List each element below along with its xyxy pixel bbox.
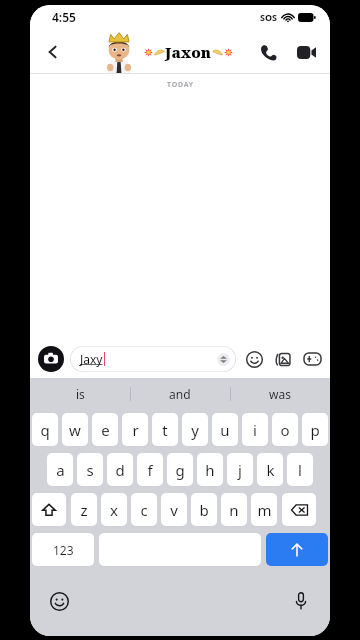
button[interactable]: w <box>62 413 88 446</box>
button[interactable]: Back <box>40 39 66 65</box>
button[interactable]: d <box>107 453 133 486</box>
button[interactable]: n <box>221 493 247 526</box>
staticText: f <box>147 460 153 480</box>
staticText: and <box>169 386 191 402</box>
staticText: 4:55 <box>52 9 76 25</box>
button[interactable]: Camera <box>38 346 64 372</box>
staticText: e <box>101 420 110 440</box>
button[interactable]: m <box>251 493 277 526</box>
staticText: v <box>170 500 178 520</box>
button[interactable]: r <box>122 413 148 446</box>
button[interactable]: h <box>197 453 223 486</box>
staticText: Jaxon <box>165 42 212 62</box>
staticText: d <box>115 460 125 480</box>
staticText: s <box>86 460 94 480</box>
button[interactable]: Expand <box>217 353 230 366</box>
staticText: g <box>175 460 185 480</box>
button[interactable]: Send <box>266 533 328 566</box>
staticText: q <box>40 420 50 440</box>
button[interactable]: Backspace <box>282 493 316 526</box>
button[interactable]: and <box>130 378 230 410</box>
button[interactable]: is <box>30 378 130 410</box>
button[interactable]: Dictation <box>288 588 314 614</box>
staticText: i <box>253 420 257 440</box>
button[interactable]: Call <box>256 40 280 64</box>
button[interactable]: Shift <box>32 493 66 526</box>
button[interactable]: b <box>191 493 217 526</box>
button[interactable]: FaceTime <box>294 40 318 64</box>
staticText: a <box>56 460 65 480</box>
staticText: n <box>229 500 239 520</box>
button[interactable]: i <box>242 413 268 446</box>
button[interactable]: q <box>32 413 58 446</box>
button[interactable]: c <box>131 493 157 526</box>
staticText: w <box>69 420 81 440</box>
button[interactable]: was <box>230 378 330 410</box>
button[interactable]: y <box>182 413 208 446</box>
staticText: 123 <box>53 542 74 558</box>
button[interactable]: x <box>101 493 127 526</box>
staticText: u <box>220 420 230 440</box>
button[interactable]: a <box>47 453 73 486</box>
staticText: k <box>266 460 275 480</box>
staticText: TODAY <box>167 80 194 90</box>
staticText: Jaxy <box>80 351 103 367</box>
staticText: h <box>205 460 215 480</box>
staticText: m <box>257 500 272 520</box>
button[interactable]: k <box>257 453 283 486</box>
staticText: j <box>238 460 242 480</box>
button[interactable]: z <box>71 493 97 526</box>
staticText: x <box>110 500 118 520</box>
button[interactable]: 123 <box>32 533 94 566</box>
staticText: SOS <box>260 11 278 23</box>
button[interactable]: Jaxon <box>99 31 233 73</box>
button[interactable]: Emoji keyboard <box>46 588 72 614</box>
button[interactable]: u <box>212 413 238 446</box>
button[interactable]: Apps <box>302 349 322 369</box>
staticText: r <box>132 420 139 440</box>
button[interactable]: f <box>137 453 163 486</box>
staticText: l <box>298 460 302 480</box>
staticText: was <box>269 386 291 402</box>
button[interactable]: p <box>302 413 328 446</box>
staticText: o <box>280 420 290 440</box>
button[interactable]: Jaxy <box>70 346 236 372</box>
staticText: z <box>80 500 88 520</box>
button[interactable]: t <box>152 413 178 446</box>
staticText: y <box>191 420 199 440</box>
staticText: b <box>199 500 209 520</box>
button[interactable]: g <box>167 453 193 486</box>
button[interactable]: Stickers <box>273 349 293 369</box>
staticText: t <box>162 420 168 440</box>
button[interactable]: j <box>227 453 253 486</box>
staticText: p <box>310 420 320 440</box>
staticText: c <box>140 500 148 520</box>
button[interactable]: l <box>287 453 313 486</box>
button[interactable]: s <box>77 453 103 486</box>
staticText: is <box>76 386 85 402</box>
button[interactable]: Emoji <box>244 349 264 369</box>
button[interactable]: v <box>161 493 187 526</box>
button[interactable]: o <box>272 413 298 446</box>
button[interactable]: e <box>92 413 118 446</box>
